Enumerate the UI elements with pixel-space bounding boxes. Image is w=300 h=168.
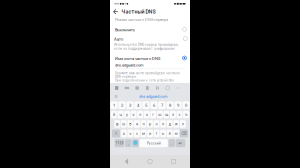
staticText: 2 [121,103,123,108]
button[interactable]: ъ [183,111,189,118]
button[interactable]: 1 [110,101,118,109]
button[interactable]: Инструмент клавиатуры [122,83,132,93]
button[interactable]: х [177,111,182,118]
button[interactable]: щ [163,111,169,118]
button[interactable]: ⇧ [112,129,120,137]
staticText: 7 [161,103,163,108]
button[interactable]: Инструмент клавиатуры [112,83,122,93]
staticText: ч [129,131,131,136]
staticText: ж [175,122,178,126]
button[interactable]: dns.adguard.com [139,94,167,99]
button[interactable]: Главный экран [143,155,157,168]
staticText: о [156,122,158,126]
button[interactable]: ы [121,120,127,128]
button[interactable]: Выключить [110,22,190,32]
button[interactable]: н [144,111,150,118]
button[interactable]: 2 [118,101,126,109]
staticText: з [172,112,174,117]
button[interactable]: ц [117,111,123,118]
staticText: dns.adguard.com [139,94,167,99]
button[interactable]: Русский [139,139,168,147]
button[interactable]: л [160,120,166,128]
button[interactable]: , [125,139,131,147]
button[interactable]: г [150,111,156,118]
staticText: dns.adguard.com [115,63,144,68]
button[interactable]: к [131,111,137,118]
button[interactable]: у [124,111,130,118]
button[interactable]: р [147,120,153,128]
button[interactable]: а [134,120,140,128]
staticText: т [156,131,158,136]
button[interactable]: Авто [110,32,190,49]
staticText: ь [162,131,164,136]
staticText: Режим частного DNS-сервера [115,17,168,22]
button[interactable]: я [121,130,127,137]
button[interactable]: м [140,130,146,137]
button[interactable]: 8 [166,101,174,109]
button[interactable]: и [147,130,153,137]
button[interactable]: б [167,130,173,137]
button[interactable]: д [167,120,173,128]
button[interactable]: ?123 [115,139,124,147]
staticText: ?123 [115,141,123,145]
button[interactable]: ф [114,120,120,128]
button[interactable]: 0 [182,101,190,109]
button[interactable]: т [154,130,159,137]
button[interactable]: Инструмент клавиатуры [132,83,142,93]
staticText: д [169,122,171,126]
button[interactable]: 7 [158,101,166,109]
button[interactable]: ш [157,111,163,118]
staticText: 5 [145,103,147,108]
button[interactable]: . [168,139,175,147]
staticText: ⇧ [115,131,118,136]
button[interactable]: ь [160,130,166,137]
staticText: 6 [153,103,155,108]
button[interactable]: ж [173,120,179,128]
button[interactable]: ч [127,130,133,137]
button[interactable]: ⌫ [180,129,188,137]
staticText: , [128,141,129,146]
button[interactable]: й [111,111,117,118]
staticText: . [171,141,172,146]
button[interactable]: ↵ [176,139,185,147]
button[interactable]: Показать подсказки [112,93,120,99]
staticText: 4 [137,103,139,108]
button[interactable]: Назад [113,8,118,16]
button[interactable]: ю [173,130,179,137]
button[interactable]: 🌐 [132,139,139,147]
staticText: ⌫ [181,131,187,136]
button[interactable]: э [180,120,186,128]
staticText: 0 [185,103,187,108]
button[interactable]: 9 [174,101,182,109]
staticText: х [178,112,180,117]
button[interactable]: 3 [126,101,134,109]
staticText: Имя хоста частного DNS [115,56,160,61]
staticText: л [162,122,164,126]
staticText: ц [119,112,121,117]
staticText: ю [175,131,178,136]
staticText: Авто [114,37,123,41]
button[interactable]: 5 [142,101,150,109]
staticText: Частный DNS [121,9,155,15]
staticText: Укажите имя хоста провайдера частного DN… [115,71,181,93]
staticText: э [182,122,184,126]
button[interactable]: е [137,111,143,118]
button[interactable]: Имя хоста частного DNS [110,49,190,60]
button[interactable]: з [170,111,176,118]
button[interactable]: Назад [119,155,133,168]
button[interactable]: о [154,120,159,128]
button[interactable]: с [134,130,140,137]
staticText: Выключить [115,27,135,32]
button[interactable]: Инструмент клавиатуры [142,83,152,93]
staticText: ф [116,122,119,126]
staticText: й [113,112,115,117]
button[interactable]: в [127,120,133,128]
button[interactable]: 4 [134,101,142,109]
button[interactable]: Инструмент клавиатуры [152,83,163,93]
button[interactable]: 6 [150,101,158,109]
button[interactable]: Инструмент клавиатуры [173,83,183,93]
button[interactable]: Обзор [166,155,180,168]
button[interactable]: п [140,120,146,128]
button[interactable]: Инструмент клавиатуры [163,83,173,93]
staticText: Русский [147,141,161,145]
